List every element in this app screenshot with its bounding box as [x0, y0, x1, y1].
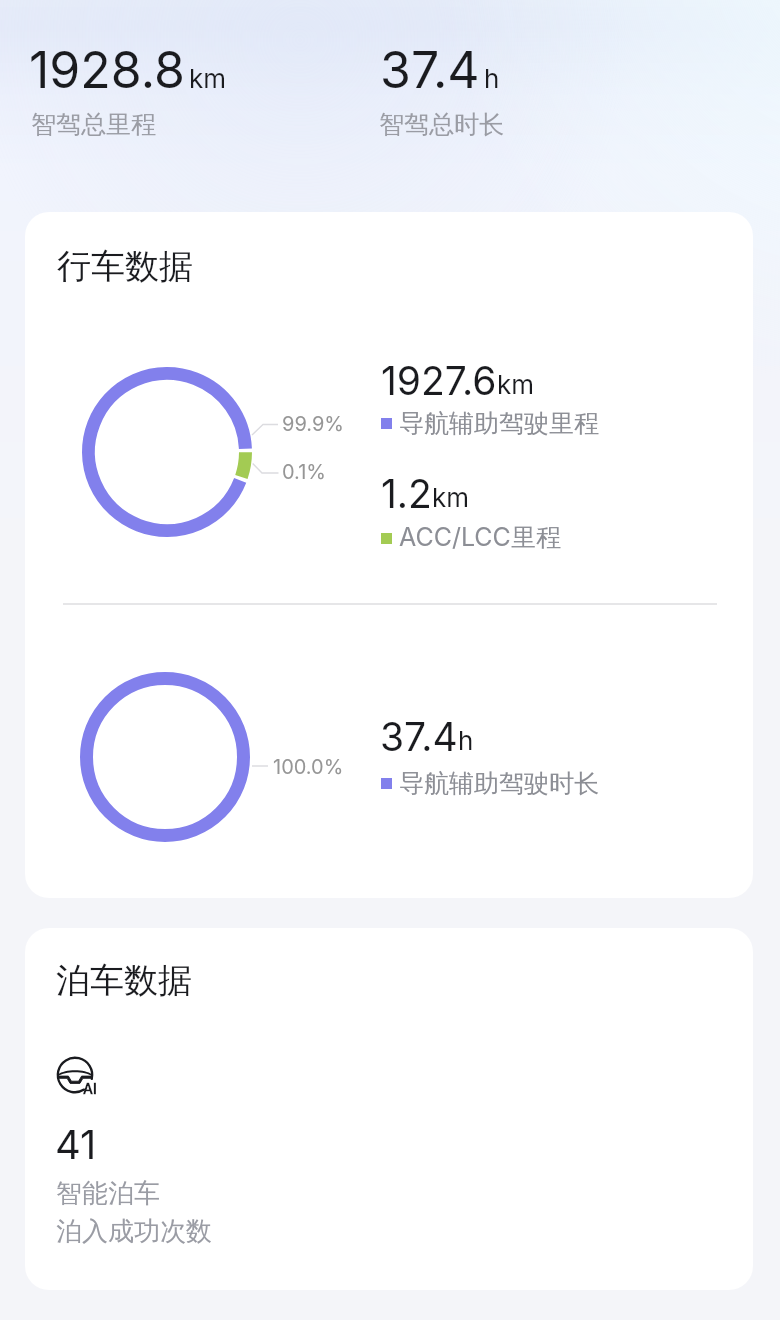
- staticText: h: [484, 63, 500, 94]
- staticText: 智驾总里程: [31, 109, 156, 140]
- staticText: km: [497, 369, 535, 400]
- staticText: ACC/LCC里程: [399, 522, 561, 554]
- staticText: 1928.8: [29, 40, 185, 100]
- staticText: km: [432, 482, 470, 513]
- staticText: 37.4: [380, 713, 458, 760]
- staticText: 0.1%: [282, 460, 326, 484]
- staticText: 37.4: [380, 40, 480, 100]
- staticText: 行车数据: [57, 245, 193, 288]
- button[interactable]: 泊车数据: [25, 928, 753, 1290]
- staticText: 智驾总时长: [379, 109, 504, 140]
- staticText: 智能泊车: [56, 1177, 160, 1210]
- staticText: 41: [55, 1120, 97, 1168]
- staticText: 100.0%: [273, 755, 344, 779]
- button[interactable]: 智能泊车 AI: [52, 1050, 108, 1100]
- staticText: 1.2: [381, 470, 432, 517]
- staticText: 99.9%: [282, 412, 344, 436]
- button[interactable]: 行车数据: [25, 212, 753, 898]
- staticText: AI: [83, 1080, 97, 1097]
- staticText: 导航辅助驾驶里程: [399, 408, 599, 439]
- staticText: 泊车数据: [56, 959, 192, 1002]
- staticText: 1927.6: [381, 357, 497, 404]
- staticText: km: [189, 63, 227, 94]
- staticText: h: [458, 725, 474, 756]
- staticText: 泊入成功次数: [56, 1215, 212, 1248]
- staticText: 导航辅助驾驶时长: [399, 768, 599, 799]
